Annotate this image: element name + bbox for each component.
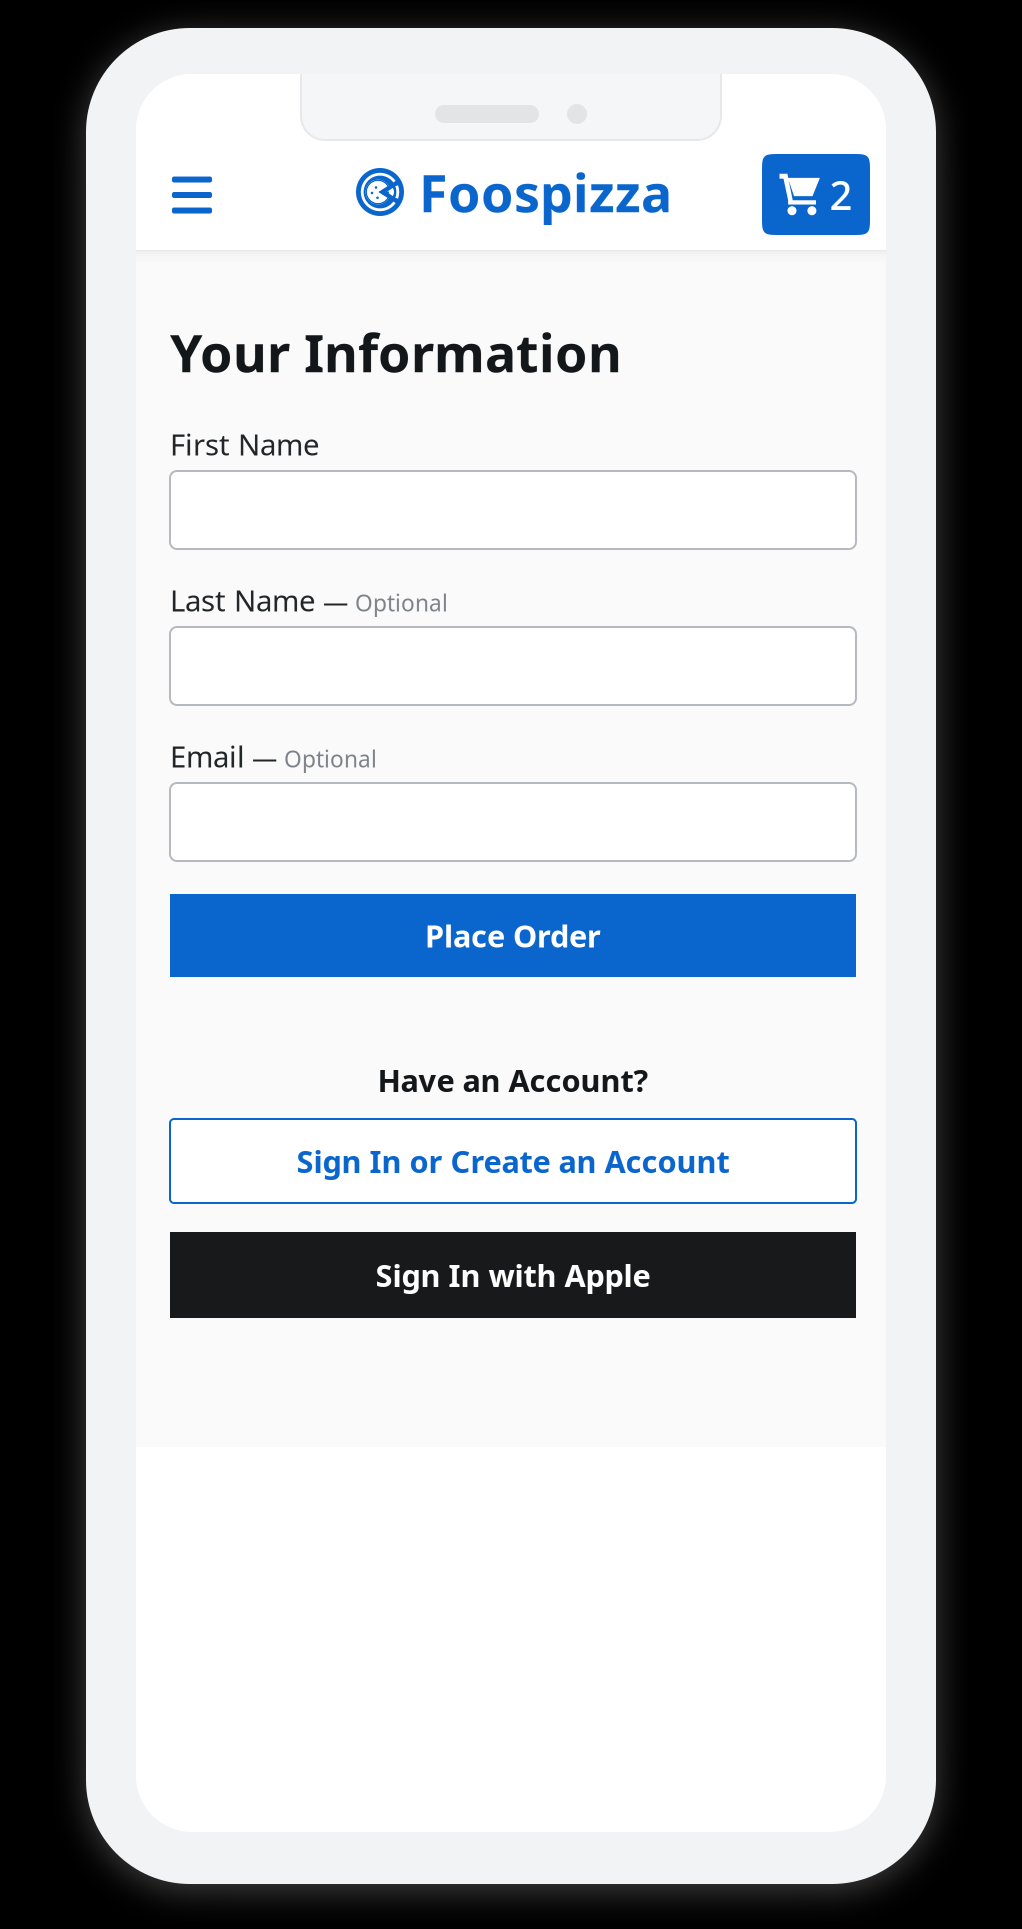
staticText: Sign In with Apple [375,1255,650,1295]
staticText: — [323,585,348,618]
button[interactable]: Place Order [170,894,856,977]
staticText: Optional [284,743,377,774]
button[interactable]: Sign In with Apple [170,1232,856,1318]
staticText: Email [170,736,245,775]
staticText: Optional [355,587,448,618]
staticText: Sign In or Create an Account [296,1141,729,1181]
staticText: First Name [170,424,320,463]
button[interactable]: First Name [170,471,856,549]
button[interactable]: Cart, 2 items [762,154,870,235]
button[interactable]: Menu [157,160,227,230]
staticText: Place Order [425,915,601,956]
staticText: Your Information [170,317,622,387]
button[interactable]: Foospizza [356,157,672,227]
staticText: Foospizza [419,157,672,227]
button[interactable]: Email, Optional [170,783,856,861]
button[interactable]: Sign In or Create an Account [170,1119,856,1203]
staticText: Last Name [170,580,316,619]
staticText: 2 [829,168,852,221]
button[interactable]: Last Name, Optional [170,627,856,705]
staticText: Have an Account? [377,1060,648,1100]
staticText: — [252,741,277,774]
